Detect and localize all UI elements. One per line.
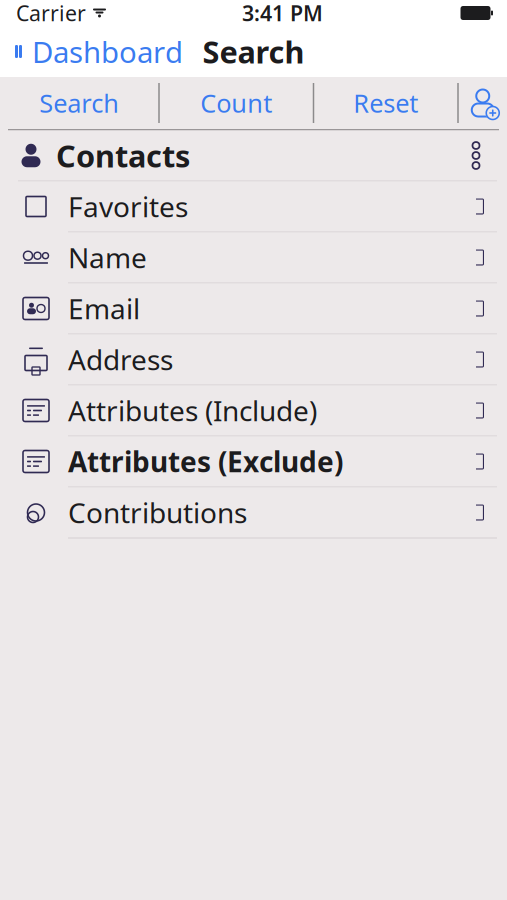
button[interactable]: Attributes (Exclude) (0, 436, 507, 487)
staticText: Attributes (Exclude) (68, 443, 343, 480)
button[interactable]: Reset (314, 77, 457, 129)
staticText: Email (68, 290, 140, 327)
staticText: Address (68, 341, 173, 378)
staticText: Carrier (16, 0, 86, 27)
button[interactable]: Search (0, 77, 158, 129)
button[interactable]: Contributions (0, 487, 507, 538)
button[interactable]: More options (459, 133, 493, 177)
staticText: Search (39, 86, 119, 120)
staticText: Name (68, 239, 147, 276)
button[interactable]: Name (0, 232, 507, 283)
staticText: Count (200, 86, 272, 120)
button[interactable]: Email (0, 283, 507, 334)
button[interactable]: Address (0, 334, 507, 385)
staticText: Contributions (68, 494, 247, 531)
button[interactable]: Dashboard (0, 26, 183, 77)
staticText: Search (202, 31, 304, 72)
staticText: Attributes (Include) (68, 392, 317, 429)
staticText: Contacts (56, 135, 190, 176)
staticText: Reset (353, 86, 418, 120)
button[interactable]: Count (160, 77, 313, 129)
staticText: 3:41 PM (242, 0, 323, 27)
staticText: Dashboard (32, 32, 183, 71)
button[interactable]: Favorites (0, 181, 507, 232)
staticText: Favorites (68, 188, 188, 225)
button[interactable]: Attributes (Include) (0, 385, 507, 436)
button[interactable]: Add Contact (459, 77, 507, 129)
